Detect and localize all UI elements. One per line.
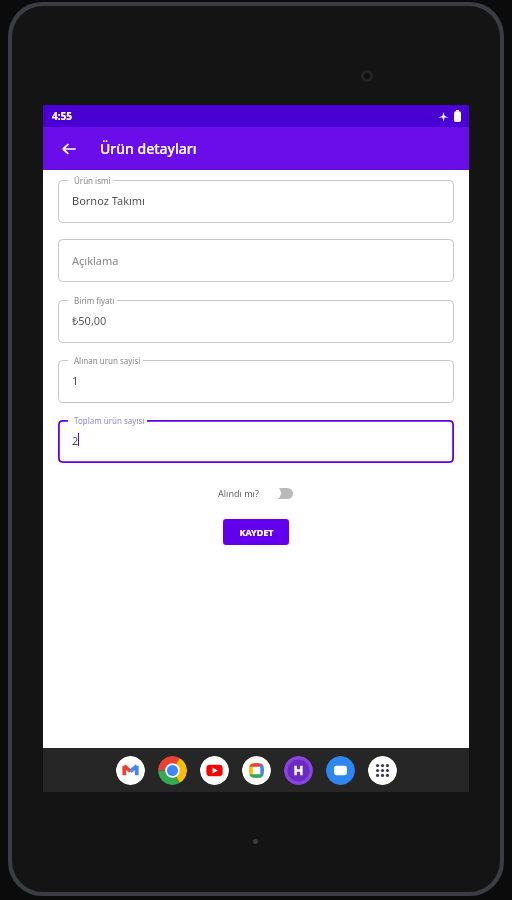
staticText: Ürün detayları: [100, 139, 197, 158]
staticText: Toplam ürün sayısı: [74, 415, 145, 426]
staticText: Açıklama: [72, 253, 119, 268]
button[interactable]: Toplam ürün sayısı: [58, 420, 454, 463]
button[interactable]: Gmail: [116, 756, 145, 785]
button[interactable]: YouTube: [200, 756, 229, 785]
staticText: 4:55: [52, 109, 72, 123]
button[interactable]: Ürün ismi: [58, 180, 454, 223]
staticText: Birim fiyatı: [74, 295, 115, 306]
button[interactable]: Birim fiyatı: [58, 300, 454, 343]
staticText: Alınan urun sayisi: [74, 355, 141, 366]
staticText: 2: [72, 433, 79, 448]
button[interactable]: Açıklama: [58, 239, 454, 282]
staticText: Alındı mı?: [218, 487, 259, 499]
staticText: Ürün ismi: [74, 175, 111, 186]
button[interactable]: Photos: [242, 756, 271, 785]
staticText: ₺50,00: [72, 313, 107, 328]
staticText: KAYDET: [239, 526, 274, 538]
button[interactable]: Chrome: [158, 756, 187, 785]
button[interactable]: Alınan urun sayisi: [58, 360, 454, 403]
button[interactable]: Alındı mı?: [218, 485, 295, 501]
button[interactable]: Back: [56, 136, 82, 162]
staticText: Bornoz Takımı: [72, 193, 145, 208]
staticText: 1: [72, 373, 79, 388]
button[interactable]: KAYDET: [223, 519, 289, 545]
button[interactable]: Messages: [326, 756, 355, 785]
button[interactable]: All apps: [368, 756, 397, 785]
button[interactable]: App: [284, 756, 313, 785]
